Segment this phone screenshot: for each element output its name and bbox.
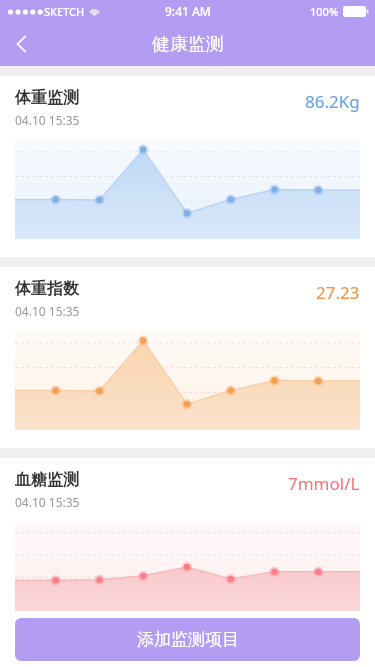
staticText: 体重监测 xyxy=(15,88,79,108)
staticText: 体重指数 xyxy=(15,279,79,299)
staticText: 04.10 15:35 xyxy=(15,303,80,319)
staticText: 100% xyxy=(310,4,339,19)
staticText: 健康监测 xyxy=(152,33,224,56)
staticText: 血糖监测 xyxy=(15,470,79,490)
staticText: 04.10 15:35 xyxy=(15,112,80,128)
staticText: 7mmol/L xyxy=(288,472,360,495)
button[interactable]: Back xyxy=(0,22,44,66)
staticText: SKETCH xyxy=(44,4,85,19)
staticText: 27.23 xyxy=(316,281,360,304)
button[interactable]: 添加监测项目 xyxy=(15,618,360,661)
button[interactable]: 体重监测 xyxy=(0,76,375,257)
staticText: 04.10 15:35 xyxy=(15,494,80,510)
staticText: 9:41 AM xyxy=(165,3,211,19)
button[interactable]: 血糖监测 xyxy=(0,458,375,611)
staticText: 添加监测项目 xyxy=(137,629,239,650)
button[interactable]: 体重指数 xyxy=(0,267,375,448)
staticText: 86.2Kg xyxy=(305,90,360,113)
